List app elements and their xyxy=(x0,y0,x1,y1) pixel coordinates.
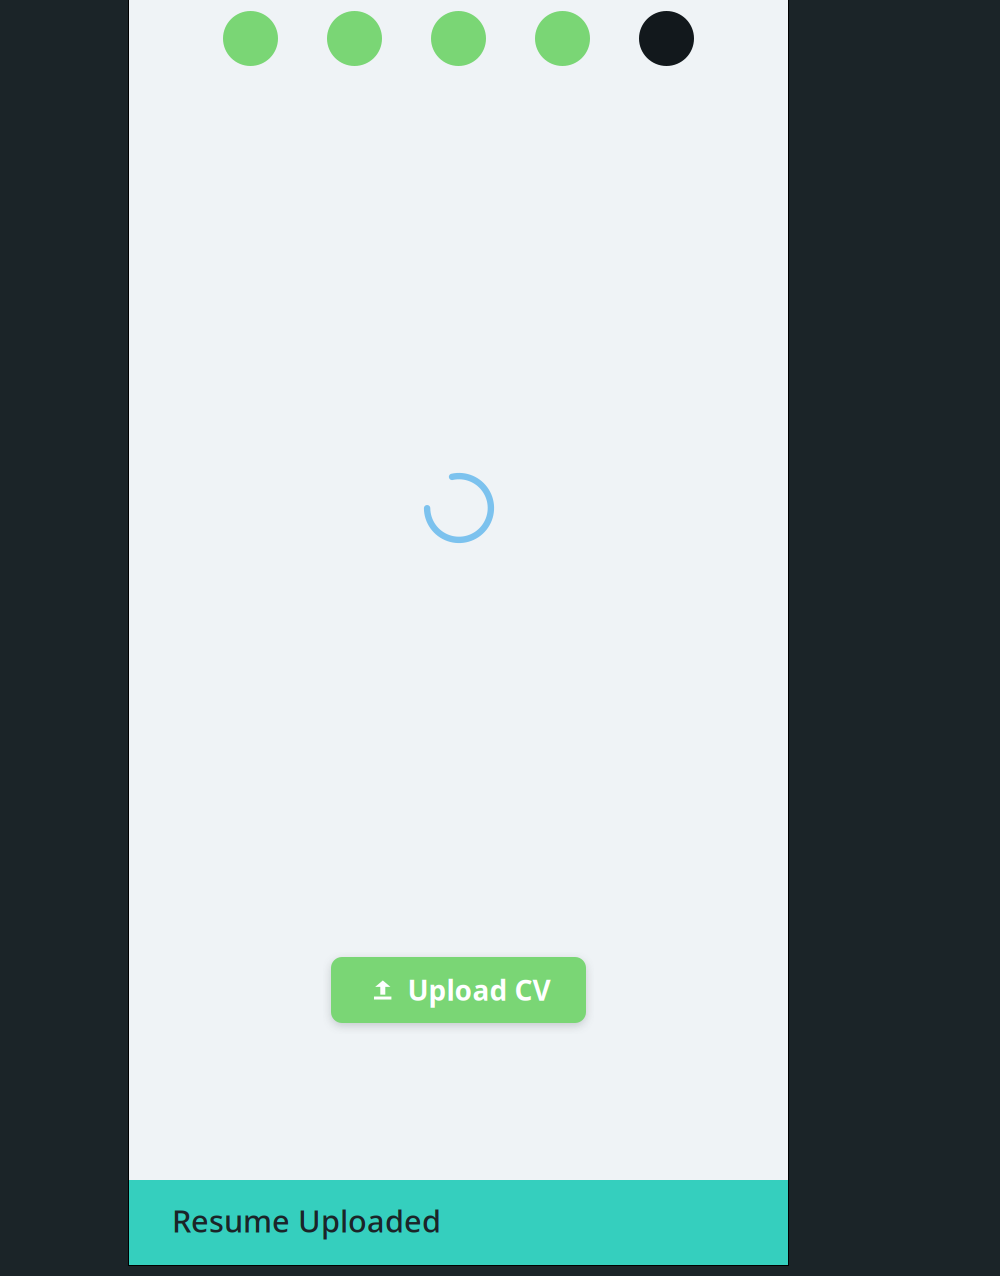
staticText: Upload CV xyxy=(407,971,550,1009)
button[interactable]: Upload CV xyxy=(331,957,586,1023)
staticText: Resume Uploaded xyxy=(172,1200,441,1241)
